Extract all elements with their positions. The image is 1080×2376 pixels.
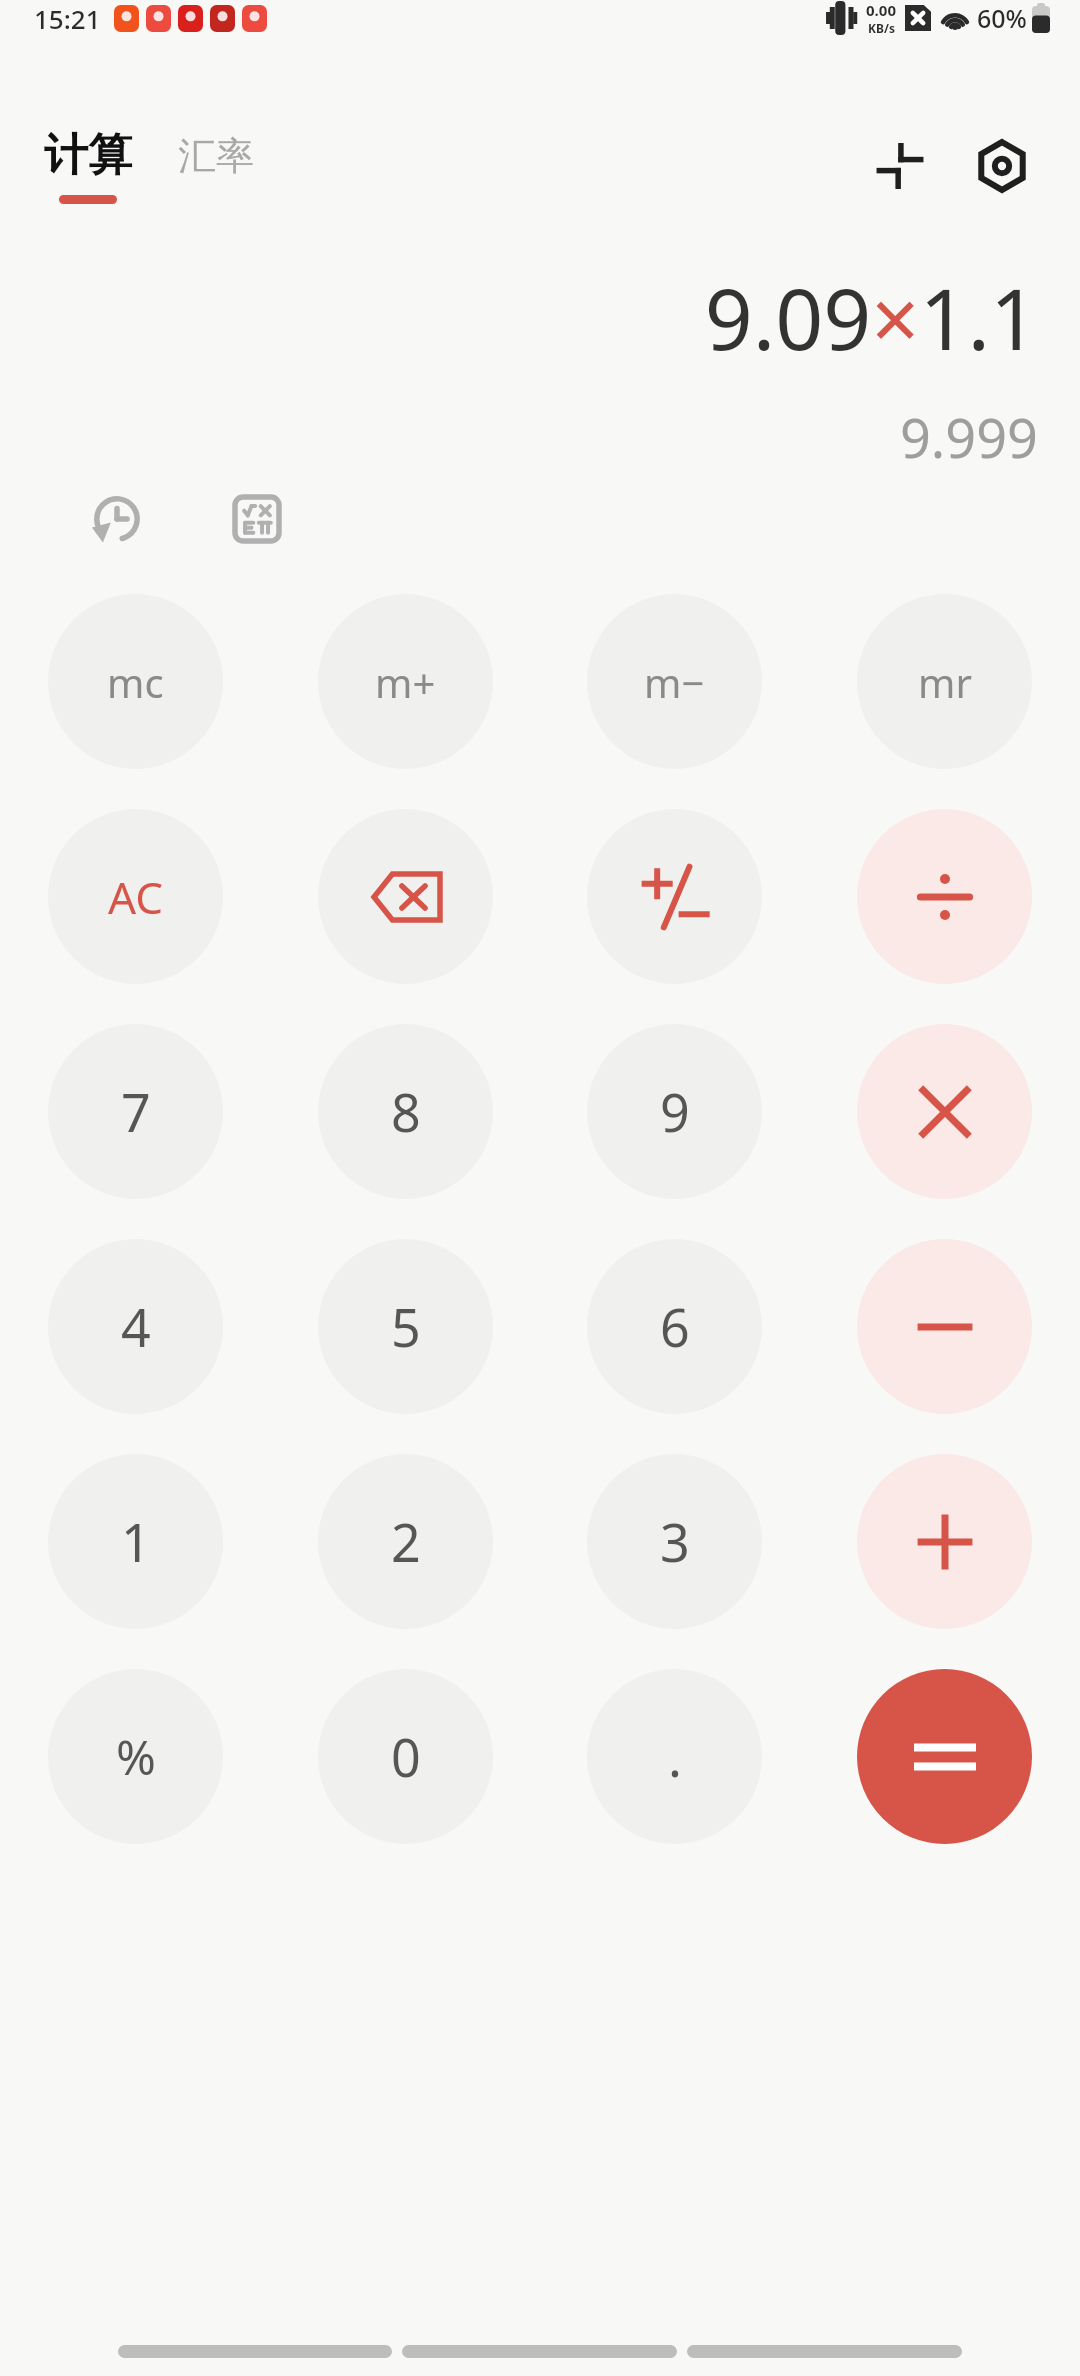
button[interactable]: 7 — [48, 1024, 223, 1199]
button[interactable]: 1 — [48, 1454, 223, 1629]
button[interactable]: 4 — [48, 1239, 223, 1414]
staticText: m− — [644, 655, 705, 709]
staticText: 9.09×1.1 — [704, 260, 1038, 374]
button[interactable]: . — [587, 1669, 762, 1844]
button[interactable]: Multiply — [857, 1024, 1032, 1199]
button[interactable]: m− — [587, 594, 762, 769]
button[interactable]: 8 — [318, 1024, 493, 1199]
button[interactable]: Plus — [857, 1454, 1032, 1629]
button[interactable]: mc — [48, 594, 223, 769]
staticText: mc — [107, 655, 164, 709]
button[interactable]: 9 — [587, 1024, 762, 1199]
button[interactable]: History — [84, 486, 150, 552]
staticText: 8 — [391, 1076, 421, 1147]
staticText: 60% — [977, 1, 1027, 35]
button[interactable]: Divide — [857, 809, 1032, 984]
button[interactable]: Equals — [857, 1669, 1032, 1844]
staticText: 3 — [660, 1506, 690, 1577]
staticText: 9 — [660, 1076, 690, 1147]
staticText: . — [668, 1721, 682, 1792]
button[interactable]: mr — [857, 594, 1032, 769]
button[interactable]: Plus minus — [587, 809, 762, 984]
staticText: 9.999 — [899, 400, 1038, 474]
staticText: 6 — [660, 1291, 690, 1362]
staticText: 0.00 — [866, 0, 896, 20]
button[interactable]: % — [48, 1669, 223, 1844]
button[interactable]: 汇率 — [168, 126, 264, 206]
staticText: 汇率 — [178, 132, 254, 180]
button[interactable]: AC — [48, 809, 223, 984]
staticText: 5 — [391, 1291, 421, 1362]
button[interactable]: 5 — [318, 1239, 493, 1414]
staticText: KB/s — [868, 20, 895, 36]
button[interactable]: 2 — [318, 1454, 493, 1629]
staticText: 2 — [391, 1506, 421, 1577]
staticText: 15:21 — [34, 1, 101, 36]
staticText: 4 — [121, 1291, 151, 1362]
button[interactable]: 6 — [587, 1239, 762, 1414]
staticText: mr — [918, 655, 972, 709]
staticText: 1 — [121, 1506, 151, 1577]
button[interactable]: 3 — [587, 1454, 762, 1629]
button[interactable]: 0 — [318, 1669, 493, 1844]
button[interactable]: Collapse — [862, 128, 938, 204]
staticText: m+ — [375, 655, 436, 709]
staticText: 7 — [121, 1076, 151, 1147]
button[interactable]: Backspace — [318, 809, 493, 984]
staticText: 0 — [391, 1721, 421, 1792]
staticText: 计算 — [44, 128, 132, 183]
button[interactable]: Scientific — [224, 486, 290, 552]
staticText: AC — [108, 867, 164, 927]
button[interactable]: m+ — [318, 594, 493, 769]
button[interactable]: 计算 — [34, 122, 142, 210]
button[interactable]: Settings — [964, 128, 1040, 204]
button[interactable]: Minus — [857, 1239, 1032, 1414]
staticText: % — [116, 1724, 156, 1789]
